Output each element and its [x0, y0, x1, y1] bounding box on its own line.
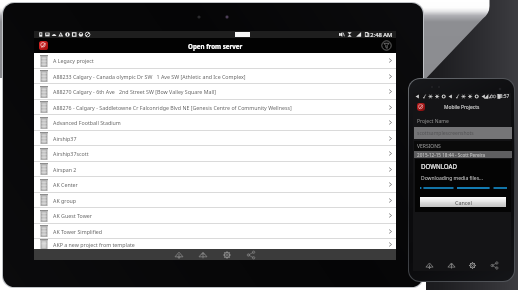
- staticText: Mobile Projects: [444, 104, 480, 111]
- button[interactable]: Upload: [447, 261, 456, 270]
- button[interactable]: Filter: [381, 40, 392, 51]
- staticText: 2015-12-15 18:44 - Scott Pereira: [417, 152, 486, 158]
- button[interactable]: AK group: [34, 193, 396, 207]
- staticText: 12:48 AM: [367, 31, 393, 38]
- staticText: Airship37scott: [53, 150, 387, 157]
- button[interactable]: Airspan 2: [34, 162, 396, 176]
- button[interactable]: App logo: [417, 103, 425, 111]
- staticText: AK Tower Simplified: [53, 228, 387, 235]
- staticText: Advanced Football Stadium: [53, 119, 387, 126]
- staticText: A Legacy project: [53, 57, 387, 64]
- button[interactable]: AK Center: [34, 177, 396, 192]
- staticText: AKP a new project from template: [53, 241, 387, 248]
- button[interactable]: Settings: [222, 250, 232, 260]
- staticText: DOWNLOAD: [421, 162, 458, 170]
- button[interactable]: Airship37: [34, 131, 396, 145]
- button[interactable]: A Legacy project: [34, 53, 396, 68]
- staticText: AK Center: [53, 181, 387, 188]
- button[interactable]: Advanced Football Stadium: [34, 115, 396, 130]
- button[interactable]: Upload: [198, 250, 208, 260]
- staticText: AK Guest Tower: [53, 212, 387, 219]
- button[interactable]: Cancel: [420, 197, 506, 207]
- button[interactable]: Download: [425, 261, 434, 270]
- button[interactable]: A88276 - Calgary - Saddletowne Cr Falcon…: [34, 100, 396, 114]
- staticText: Open from server: [188, 42, 243, 50]
- button[interactable]: scottsamplescreenshots: [414, 127, 512, 139]
- staticText: Project Name: [417, 118, 449, 125]
- staticText: Downloading media files...: [421, 175, 484, 182]
- staticText: Airspan 2: [53, 166, 387, 173]
- button[interactable]: AK Guest Tower: [34, 208, 396, 223]
- staticText: 18:57: [497, 93, 510, 100]
- button[interactable]: Download: [174, 250, 184, 260]
- button[interactable]: Share: [246, 250, 256, 260]
- staticText: A88276 - Calgary - Saddletowne Cr Falcon…: [53, 104, 387, 111]
- button[interactable]: 2015-12-15 18:44 - Scott Pereira: [414, 151, 512, 158]
- button[interactable]: Settings: [468, 261, 477, 270]
- button[interactable]: App logo: [39, 41, 48, 50]
- button[interactable]: A88270 Calgary - 6th Ave 2nd Street SW […: [34, 84, 396, 99]
- staticText: A88233 Calgary - Canada olympic Dr SW 1 …: [53, 73, 387, 80]
- staticText: A88270 Calgary - 6th Ave 2nd Street SW […: [53, 88, 387, 95]
- button[interactable]: A88233 Calgary - Canada olympic Dr SW 1 …: [34, 69, 396, 83]
- staticText: VERSIONS: [417, 143, 441, 150]
- button[interactable]: AKP a new project from template: [34, 239, 396, 249]
- staticText: AK group: [53, 197, 387, 204]
- button[interactable]: Share: [490, 261, 499, 270]
- staticText: Airship37: [53, 135, 387, 142]
- button[interactable]: AK Tower Simplified: [34, 224, 396, 238]
- staticText: Cancel: [455, 199, 472, 206]
- staticText: scottsamplescreenshots: [417, 130, 474, 137]
- button[interactable]: Airship37scott: [34, 146, 396, 161]
